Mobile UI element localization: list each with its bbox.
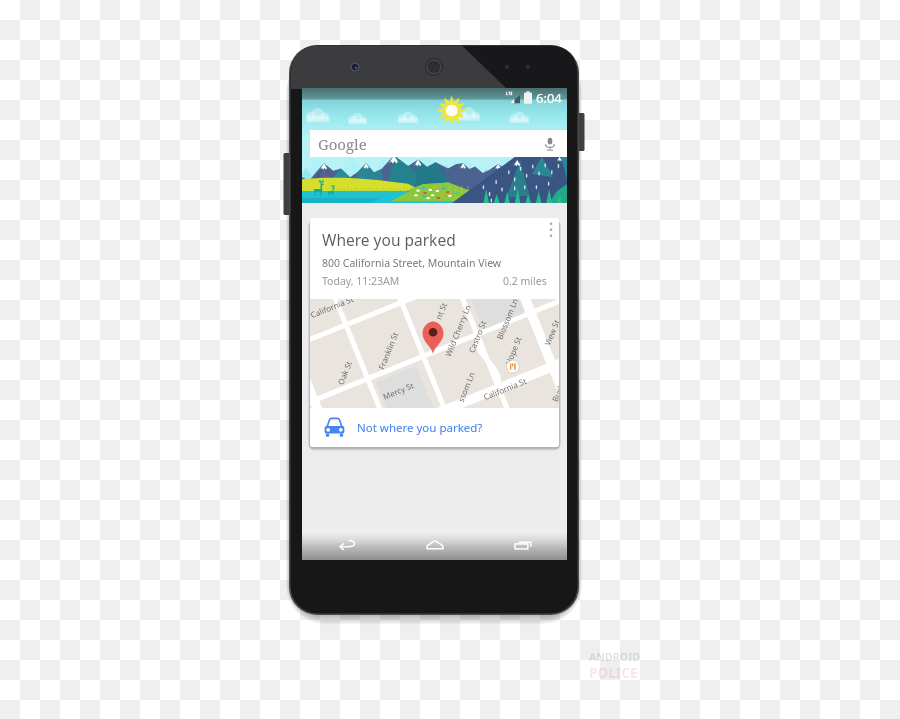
- staticText: California St: [310, 299, 355, 320]
- staticText: Where you parked: [322, 229, 456, 250]
- staticText: Mercy St: [381, 379, 416, 402]
- staticText: 6:04: [536, 89, 562, 107]
- button[interactable]: Voice search: [543, 137, 557, 151]
- staticText: California St: [482, 375, 528, 402]
- staticText: Hope St: [502, 334, 524, 366]
- staticText: nt St: [432, 300, 449, 321]
- staticText: POLICE: [589, 664, 638, 682]
- staticText: Franklin St: [375, 330, 401, 371]
- button[interactable]: Back: [302, 530, 391, 560]
- staticText: View St: [541, 318, 559, 347]
- staticText: Bush: [549, 382, 559, 403]
- staticText: 800 California Street, Mountain View: [322, 256, 502, 270]
- staticText: Google: [318, 134, 367, 154]
- button[interactable]: Recents: [479, 530, 567, 560]
- button[interactable]: Home: [391, 530, 479, 560]
- button[interactable]: Google: [310, 130, 567, 157]
- button[interactable]: More options: [543, 218, 559, 246]
- staticText: Blossom Ln: [494, 299, 520, 341]
- staticText: Wild Cherry Ln: [442, 303, 473, 358]
- staticText: Castro St: [465, 319, 488, 354]
- button[interactable]: Not where you parked?: [310, 408, 559, 447]
- staticText: Not where you parked?: [357, 420, 483, 436]
- button[interactable]: Where you parked: [310, 218, 559, 447]
- staticText: Oak St: [335, 359, 354, 386]
- staticText: ssom Ln: [455, 370, 477, 403]
- staticText: ANDROID: [589, 650, 641, 664]
- staticText: Today, 11:23AM: [322, 274, 400, 288]
- staticText: 0.2 miles: [503, 274, 547, 288]
